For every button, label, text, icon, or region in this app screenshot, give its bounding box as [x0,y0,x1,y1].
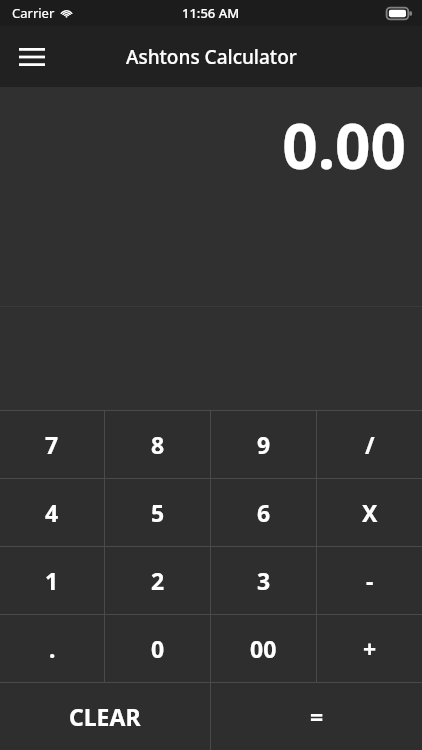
button[interactable]: 5 [105,479,210,546]
button[interactable]: X [317,479,422,546]
button[interactable]: Open navigation menu [10,35,54,79]
button[interactable]: 4 [0,479,104,546]
staticText: X [362,497,378,528]
staticText: + [363,633,377,664]
staticText: 0 [151,633,165,664]
button[interactable]: 1 [0,547,104,614]
button[interactable]: 3 [211,547,316,614]
staticText: 8 [151,429,165,460]
staticText: 0.00 [282,103,406,187]
staticText: Ashtons Calculator [126,44,297,70]
staticText: 2 [151,565,165,596]
staticText: CLEAR [69,701,141,732]
button[interactable]: 6 [211,479,316,546]
staticText: 4 [45,497,59,528]
button[interactable]: = [211,683,422,750]
staticText: 9 [257,429,271,460]
button[interactable]: CLEAR [0,683,210,750]
staticText: 3 [257,565,271,596]
staticText: = [310,701,324,732]
button[interactable]: 7 [0,411,104,478]
staticText: / [365,429,375,460]
staticText: 5 [151,497,165,528]
staticText: . [49,633,56,664]
staticText: 6 [257,497,271,528]
staticText: - [366,565,374,596]
button[interactable]: 00 [211,615,316,682]
staticText: 00 [250,633,277,664]
staticText: Carrier [12,4,55,22]
button[interactable]: - [317,547,422,614]
button[interactable]: + [317,615,422,682]
staticText: 11:56 AM [182,4,240,22]
button[interactable]: 9 [211,411,316,478]
button[interactable]: 2 [105,547,210,614]
button[interactable]: . [0,615,104,682]
button[interactable]: 0 [105,615,210,682]
button[interactable]: 8 [105,411,210,478]
button[interactable]: / [317,411,422,478]
staticText: 7 [45,429,59,460]
staticText: 1 [45,565,59,596]
